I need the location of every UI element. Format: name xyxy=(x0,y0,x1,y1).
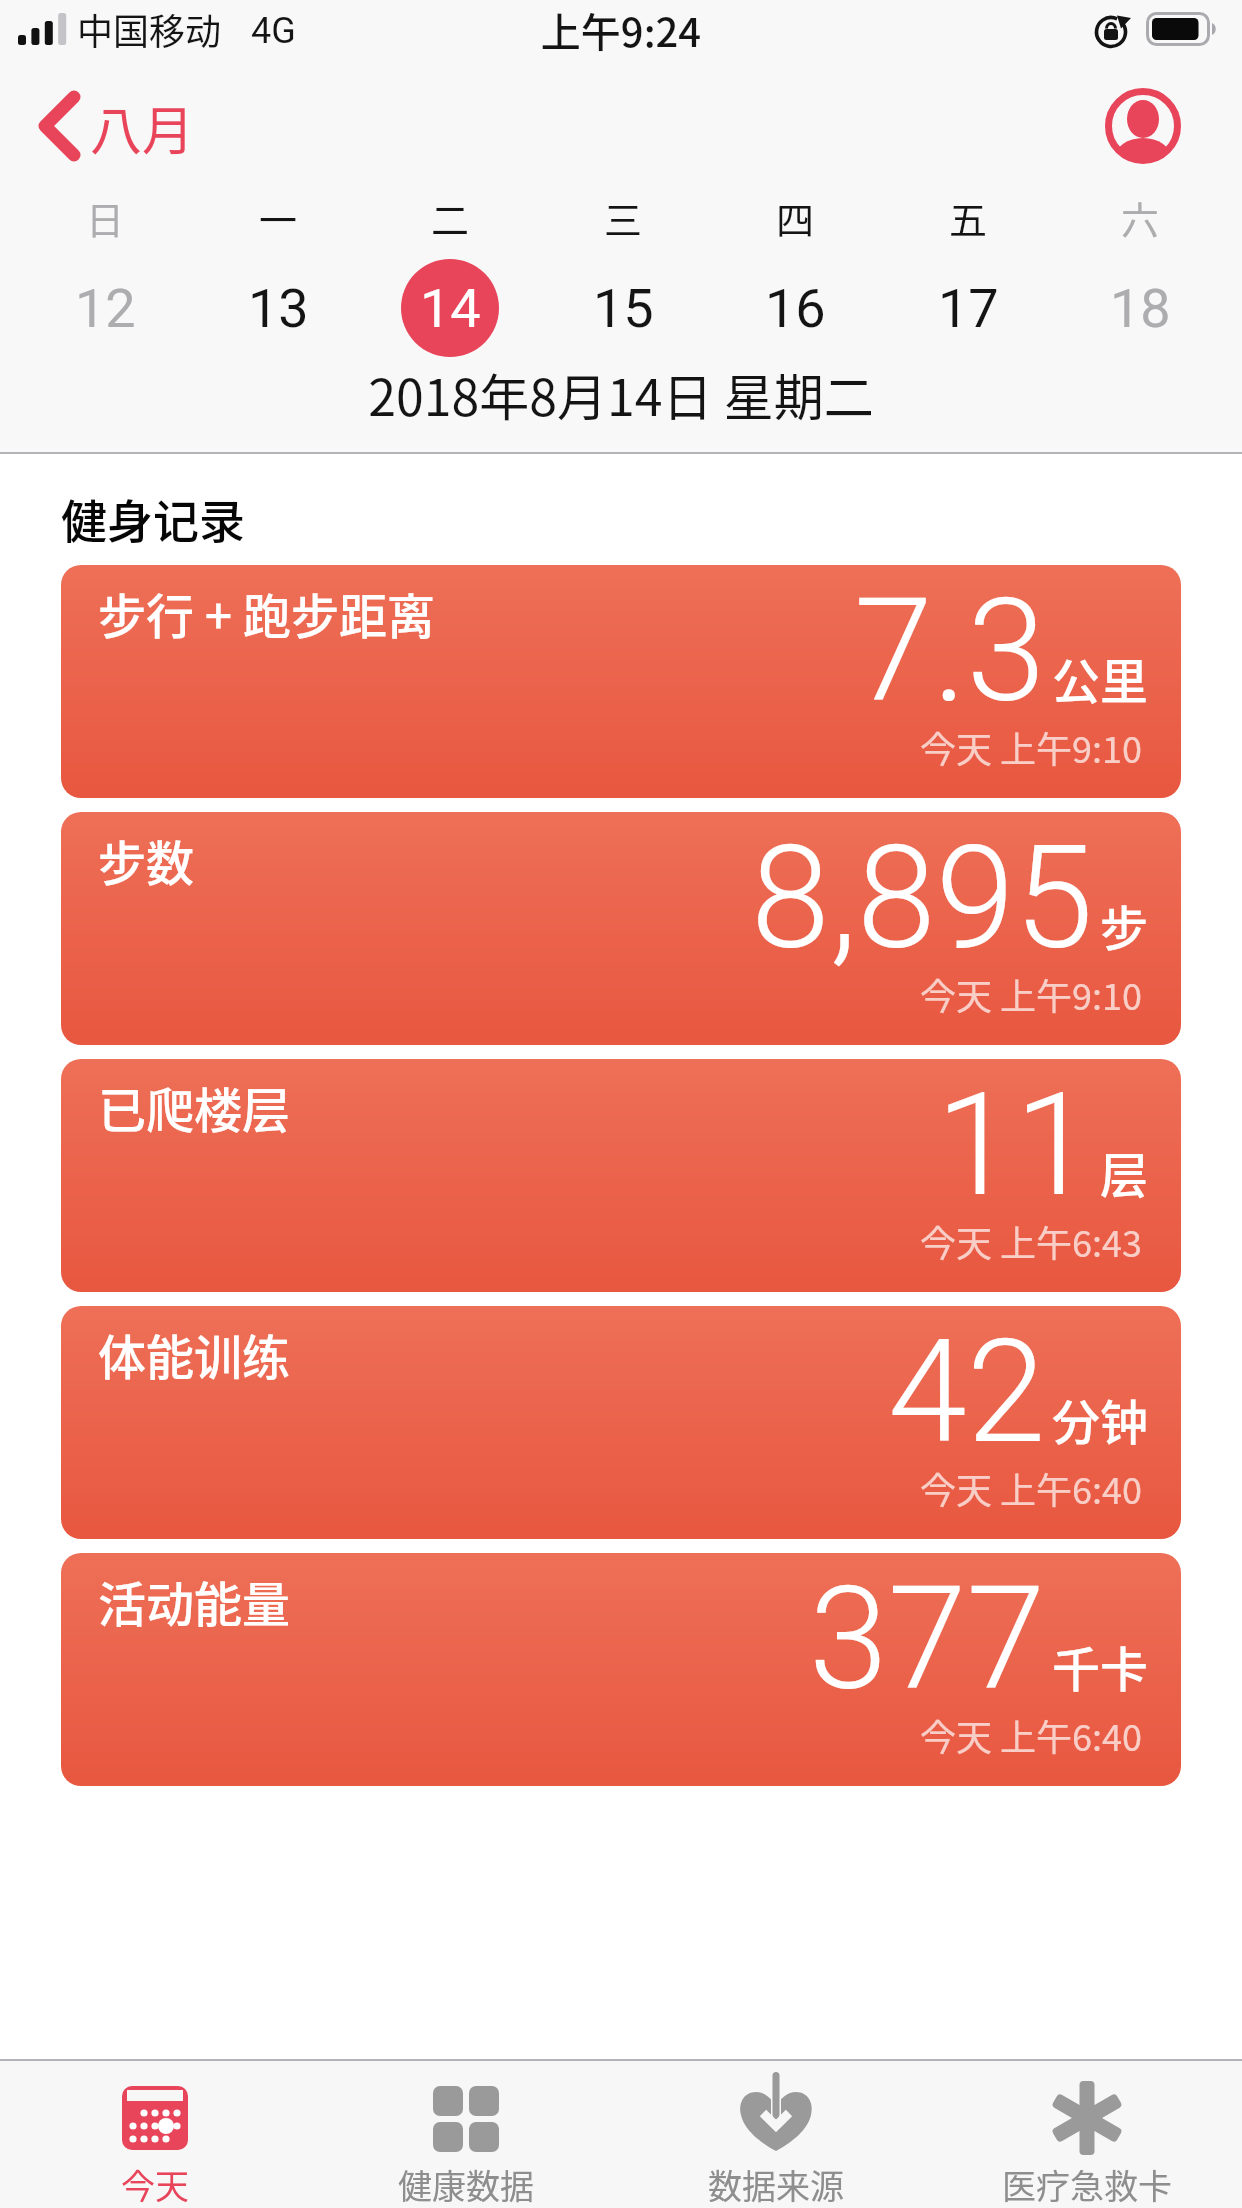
button[interactable]: 18 xyxy=(1054,272,1226,344)
staticText: 千卡 xyxy=(1052,1631,1149,1701)
staticText: 三 xyxy=(604,190,643,245)
staticText: 2018年8月14日 星期二 xyxy=(0,358,1242,430)
button[interactable]: 八月 xyxy=(36,88,187,164)
button[interactable]: 15 xyxy=(537,272,709,344)
staticText: 步 xyxy=(1100,890,1149,960)
staticText: 步行 + 跑步距离 xyxy=(98,578,435,648)
button[interactable]: 13 xyxy=(192,272,364,344)
button[interactable]: 12 xyxy=(19,272,191,344)
staticText: 377 xyxy=(809,1556,1046,1722)
staticText: 4G xyxy=(251,10,296,52)
staticText: 四 xyxy=(776,190,815,245)
button[interactable]: 16 xyxy=(709,272,881,344)
staticText: 18 xyxy=(1110,277,1171,340)
staticText: 今天 上午9:10 xyxy=(920,721,1143,773)
staticText: 7.3 xyxy=(854,568,1046,734)
staticText: 活动能量 xyxy=(98,1566,291,1636)
staticText: 已爬楼层 xyxy=(98,1072,291,1142)
button[interactable]: 体能训练 xyxy=(61,1306,1181,1539)
staticText: 16 xyxy=(765,277,826,340)
staticText: 15 xyxy=(593,277,654,340)
staticText: 13 xyxy=(248,277,309,340)
staticText: 五 xyxy=(949,190,988,245)
staticText: 健身记录 xyxy=(61,485,245,552)
staticText: 日 xyxy=(86,190,125,245)
button[interactable]: 医疗急救卡 xyxy=(932,2061,1242,2208)
staticText: 分钟 xyxy=(1052,1384,1149,1454)
staticText: 今天 上午6:40 xyxy=(920,1462,1143,1514)
button[interactable]: 今天 xyxy=(0,2061,310,2208)
staticText: 11 xyxy=(936,1062,1094,1228)
staticText: 数据来源 xyxy=(708,2160,844,2208)
staticText: 八月 xyxy=(90,90,195,165)
staticText: 14 xyxy=(420,277,481,340)
staticText: 8,895 xyxy=(751,815,1094,981)
button[interactable]: 数据来源 xyxy=(621,2061,931,2208)
staticText: 层 xyxy=(1100,1137,1149,1207)
staticText: 二 xyxy=(431,190,470,245)
button[interactable]: 健康数据 xyxy=(311,2061,621,2208)
button[interactable]: 步数 xyxy=(61,812,1181,1045)
button[interactable] xyxy=(1104,87,1182,165)
staticText: 公里 xyxy=(1052,643,1149,713)
staticText: 体能训练 xyxy=(98,1319,291,1389)
button[interactable]: 活动能量 xyxy=(61,1553,1181,1786)
staticText: 健康数据 xyxy=(398,2160,534,2208)
staticText: 六 xyxy=(1121,190,1160,245)
staticText: 12 xyxy=(75,277,136,340)
staticText: 医疗急救卡 xyxy=(1002,2160,1172,2208)
staticText: 步数 xyxy=(98,825,195,895)
button[interactable]: 已爬楼层 xyxy=(61,1059,1181,1292)
staticText: 中国移动 xyxy=(77,3,222,55)
staticText: 今天 上午6:43 xyxy=(920,1215,1143,1267)
button[interactable]: 14 xyxy=(364,272,536,344)
staticText: 今天 上午6:40 xyxy=(920,1709,1143,1761)
staticText: 上午9:24 xyxy=(0,1,1242,59)
staticText: 今天 上午9:10 xyxy=(920,968,1143,1020)
button[interactable]: 步行 + 跑步距离 xyxy=(61,565,1181,798)
staticText: 42 xyxy=(888,1309,1046,1475)
staticText: 一 xyxy=(259,190,298,245)
staticText: 今天 xyxy=(121,2160,189,2208)
button[interactable]: 17 xyxy=(882,272,1054,344)
staticText: 17 xyxy=(938,277,999,340)
